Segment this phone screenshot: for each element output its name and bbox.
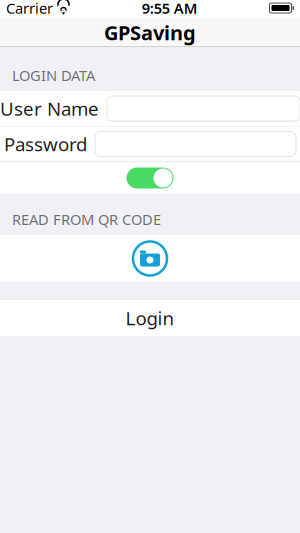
button[interactable]: Read from QR code — [0, 235, 300, 282]
staticText: READ FROM QR CODE — [12, 209, 161, 229]
button[interactable] — [0, 162, 300, 194]
staticText: Carrier — [6, 0, 53, 18]
staticText: Password — [4, 132, 87, 156]
staticText: User Name — [0, 96, 99, 121]
staticText: GPSaving — [104, 19, 196, 46]
staticText: Login — [125, 306, 174, 330]
staticText: 9:55 AM — [142, 0, 198, 18]
button[interactable]: Login — [0, 299, 300, 337]
staticText: LOGIN DATA — [12, 65, 95, 85]
